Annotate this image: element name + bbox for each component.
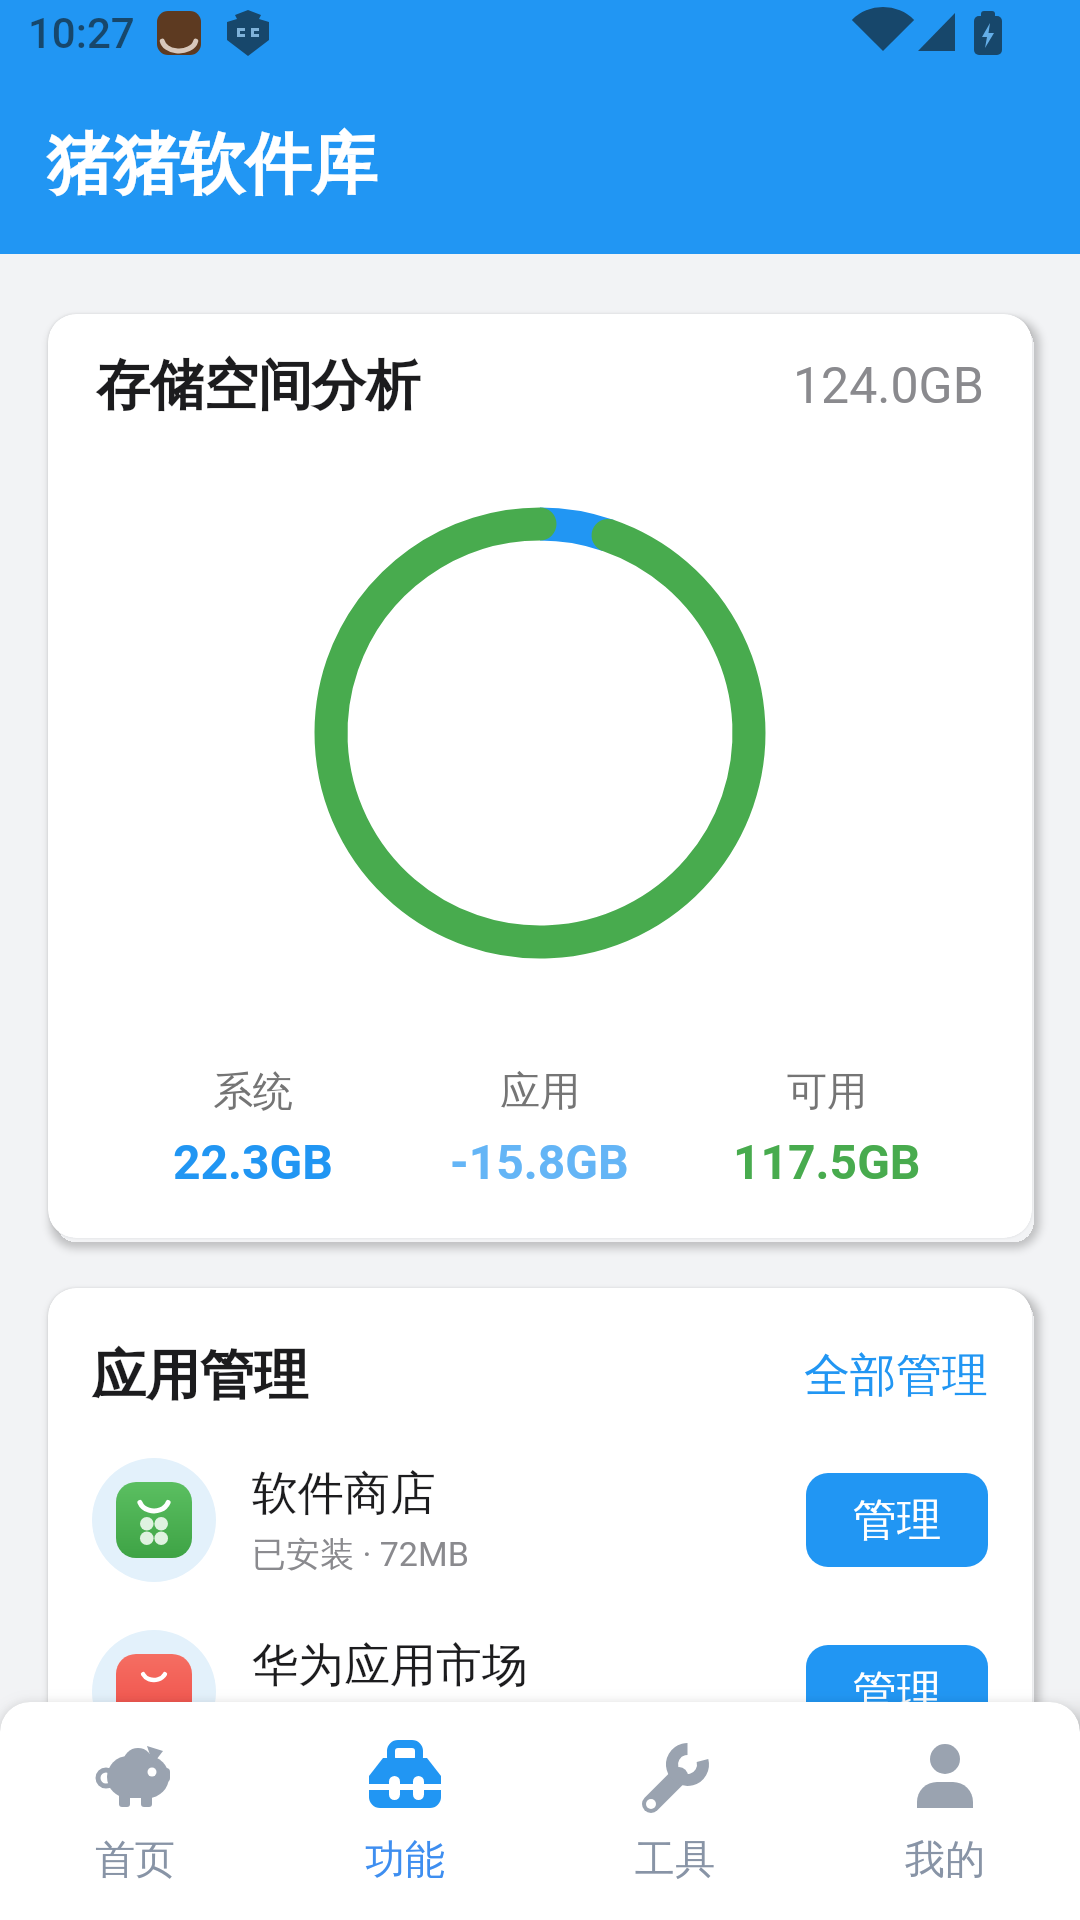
staticText: 工具 — [635, 1834, 715, 1884]
staticText: 华为应用市场 — [252, 1637, 528, 1695]
staticText: 可用 — [787, 1066, 867, 1116]
staticText: 软件商店 — [252, 1465, 436, 1523]
staticText: 应用管理 — [92, 1342, 804, 1410]
staticText: 首页 — [95, 1834, 175, 1884]
button[interactable]: 我的 — [810, 1702, 1080, 1920]
staticText: 我的 — [905, 1834, 985, 1884]
staticText: 124.0GB — [793, 357, 984, 416]
staticText: 猪猪软件库 — [47, 123, 377, 206]
button[interactable]: HUAWEI — [92, 1630, 988, 1754]
staticText: 应用 — [500, 1066, 580, 1116]
button[interactable]: 工具 — [540, 1702, 810, 1920]
staticText: 系统 — [213, 1066, 293, 1116]
button[interactable]: 管理 — [806, 1473, 988, 1567]
staticText: 存储空间分析 — [96, 352, 793, 420]
button[interactable]: 首页 — [0, 1702, 270, 1920]
button[interactable]: 软件商店 — [92, 1458, 988, 1582]
staticText: 10:27 — [28, 9, 135, 58]
staticText: 管理 — [853, 1665, 941, 1720]
staticText: 已安装 · 72MB — [252, 1533, 469, 1576]
staticText: 已安装 · 56MB — [252, 1705, 469, 1748]
staticText: 功能 — [365, 1834, 445, 1884]
staticText: -15.8GB — [450, 1134, 629, 1190]
button[interactable]: 功能 — [270, 1702, 540, 1920]
staticText: 22.3GB — [173, 1134, 333, 1190]
button[interactable]: 管理 — [806, 1645, 988, 1739]
staticText: 117.5GB — [733, 1134, 921, 1190]
button[interactable]: 全部管理 — [804, 1347, 988, 1405]
staticText: 管理 — [853, 1493, 941, 1548]
